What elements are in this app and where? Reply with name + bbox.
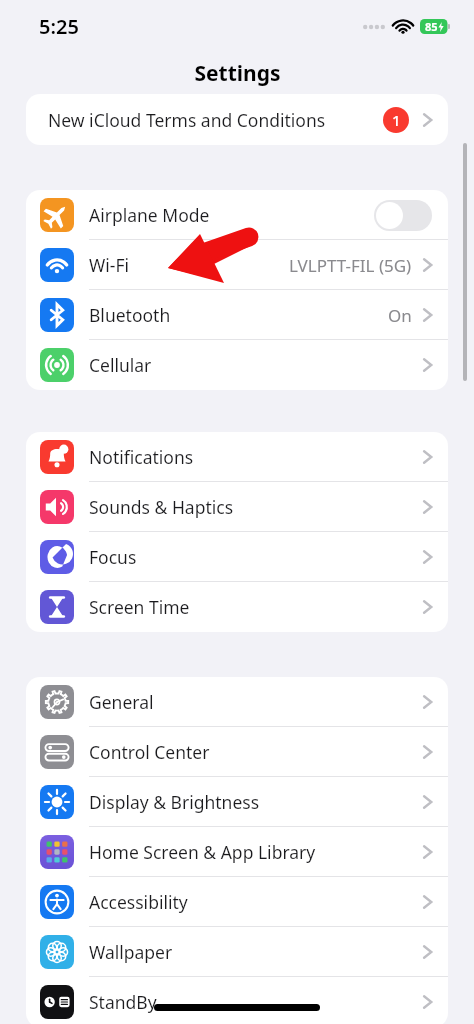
staticText: Sounds & Haptics bbox=[89, 495, 423, 519]
button[interactable]: Sounds & Haptics bbox=[26, 482, 448, 532]
staticText: Focus bbox=[89, 545, 423, 569]
button[interactable]: Wallpaper bbox=[26, 927, 448, 977]
staticText: Notifications bbox=[89, 445, 423, 469]
staticText: Settings bbox=[194, 59, 281, 88]
staticText: 85 bbox=[425, 19, 438, 34]
staticText: 1 bbox=[392, 110, 401, 130]
staticText: Display & Brightness bbox=[89, 790, 423, 814]
button[interactable]: Bluetooth bbox=[26, 290, 448, 340]
button[interactable]: Cellular bbox=[26, 340, 448, 390]
staticText: 5:25 bbox=[39, 13, 79, 40]
staticText: Cellular bbox=[89, 353, 423, 377]
button[interactable]: Home Screen & App Library bbox=[26, 827, 448, 877]
staticText: LVLPTT-FIL (5G) bbox=[289, 254, 412, 277]
button[interactable]: Screen Time bbox=[26, 582, 448, 632]
staticText: Accessibility bbox=[89, 890, 423, 914]
staticText: Home Screen & App Library bbox=[89, 840, 423, 864]
button[interactable]: StandBy bbox=[26, 977, 448, 1024]
button[interactable]: General bbox=[26, 677, 448, 727]
button[interactable]: Control Center bbox=[26, 727, 448, 777]
staticText: Wi-Fi bbox=[89, 253, 289, 277]
staticText: New iCloud Terms and Conditions bbox=[48, 108, 383, 132]
button[interactable]: Display & Brightness bbox=[26, 777, 448, 827]
button[interactable]: Notifications bbox=[26, 432, 448, 482]
staticText: Screen Time bbox=[89, 595, 423, 619]
staticText: Airplane Mode bbox=[89, 203, 374, 227]
staticText: Bluetooth bbox=[89, 303, 388, 327]
button[interactable]: Focus bbox=[26, 532, 448, 582]
staticText: On bbox=[388, 304, 412, 327]
staticText: Wallpaper bbox=[89, 940, 423, 964]
button[interactable]: Wi-Fi bbox=[26, 240, 448, 290]
button[interactable]: Airplane Mode bbox=[26, 190, 448, 240]
button[interactable]: Airplane Mode toggle bbox=[374, 200, 432, 231]
staticText: General bbox=[89, 690, 423, 714]
staticText: Control Center bbox=[89, 740, 423, 764]
button[interactable]: New iCloud Terms and Conditions bbox=[26, 94, 448, 145]
button[interactable]: Accessibility bbox=[26, 877, 448, 927]
staticText: StandBy bbox=[89, 990, 423, 1014]
